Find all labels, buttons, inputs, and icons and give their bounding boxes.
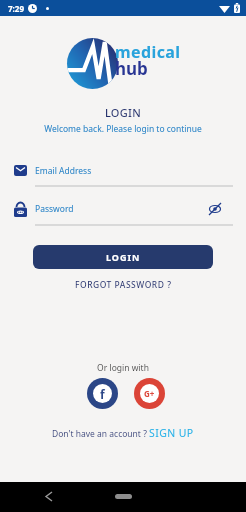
staticText: FORGOT PASSWORD ? (75, 279, 172, 291)
button[interactable]: f (87, 378, 118, 409)
staticText: G+ (144, 388, 155, 399)
staticText: Password (35, 203, 74, 215)
staticText: Don't have an account ? SIGN UP (52, 426, 194, 440)
staticText: f (100, 386, 105, 402)
staticText: LOGIN (106, 251, 141, 263)
staticText: 7:29 (8, 3, 24, 14)
button[interactable] (208, 202, 222, 216)
button[interactable]: LOGIN (33, 245, 213, 269)
button[interactable] (115, 494, 132, 499)
button[interactable]: Don't have an account ? SIGN UP (52, 426, 194, 440)
staticText: hub (115, 57, 148, 80)
button[interactable]: Password (14, 201, 222, 217)
button[interactable]: Email Address (14, 164, 246, 177)
staticText: medical (115, 41, 181, 63)
button[interactable]: G+ (134, 378, 165, 409)
staticText: Or login with (0, 362, 246, 374)
staticText: LOGIN (0, 105, 246, 120)
button[interactable]: FORGOT PASSWORD ? (75, 279, 172, 291)
staticText: Welcome back. Please login to continue (0, 123, 246, 135)
staticText: Email Address (35, 165, 92, 177)
